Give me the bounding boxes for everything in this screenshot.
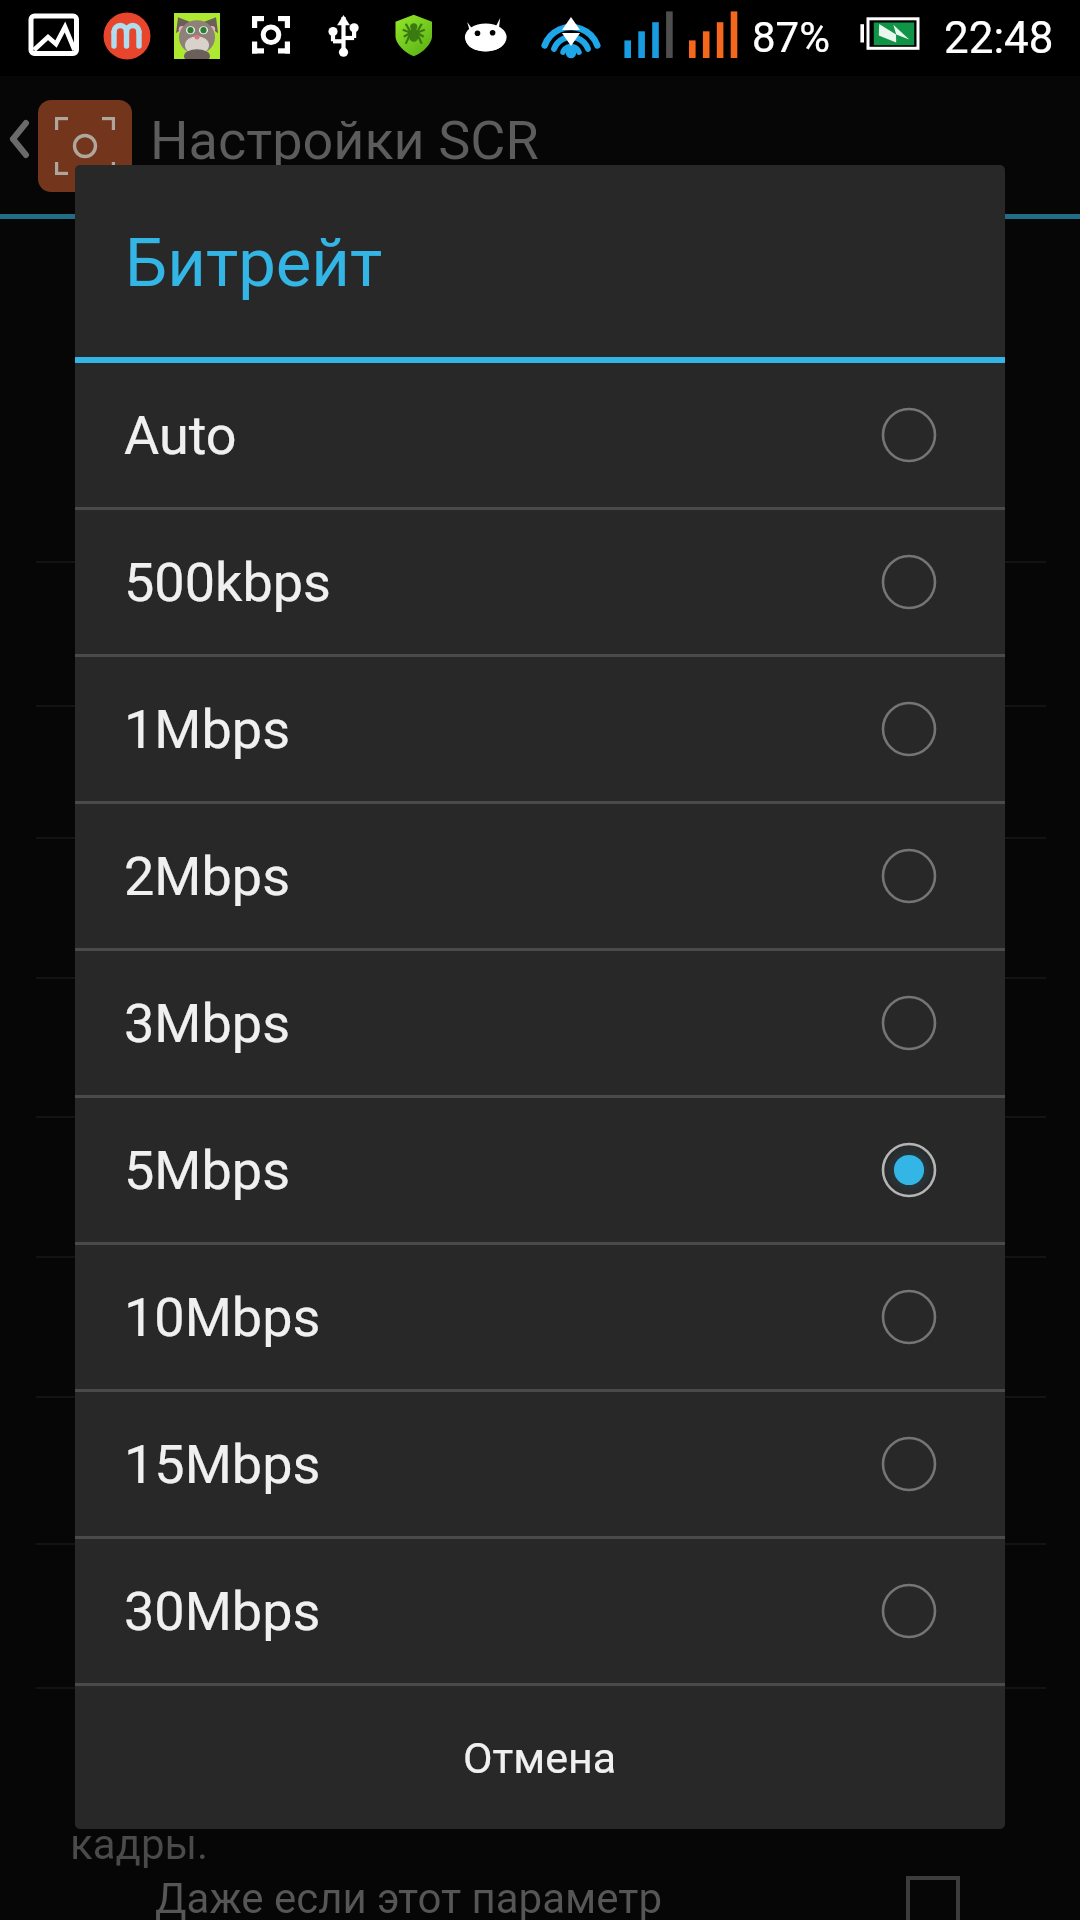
staticText: 500kbps <box>124 551 331 614</box>
button[interactable]: Отмена <box>75 1686 1005 1829</box>
button[interactable]: 3Mbps <box>75 951 1005 1095</box>
staticText: 87% <box>752 13 830 62</box>
staticText: 10Mbps <box>124 1286 321 1349</box>
staticText: 5Mbps <box>124 1139 291 1202</box>
staticText: Auto <box>124 404 237 467</box>
staticText: Настройки SCR <box>150 109 539 172</box>
staticText: 1Mbps <box>124 698 291 761</box>
staticText: 30Mbps <box>124 1580 321 1643</box>
staticText: Отмена <box>463 1733 617 1783</box>
button[interactable]: 15Mbps <box>75 1392 1005 1536</box>
staticText: Даже если этот параметр <box>155 1874 662 1920</box>
button[interactable]: 1Mbps <box>75 657 1005 801</box>
button[interactable]: 500kbps <box>75 510 1005 654</box>
staticText: 22:48 <box>944 12 1054 64</box>
staticText: Битрейт <box>125 224 383 303</box>
staticText: 3Mbps <box>124 992 291 1055</box>
staticText: кадры. <box>70 1820 209 1869</box>
button[interactable]: 30Mbps <box>75 1539 1005 1683</box>
button[interactable]: 10Mbps <box>75 1245 1005 1389</box>
button[interactable]: Navigate up <box>0 88 140 206</box>
staticText: 2Mbps <box>124 845 291 908</box>
button[interactable]: 2Mbps <box>75 804 1005 948</box>
button[interactable]: Auto <box>75 363 1005 507</box>
staticText: 15Mbps <box>124 1433 321 1496</box>
button[interactable]: 5Mbps <box>75 1098 1005 1242</box>
